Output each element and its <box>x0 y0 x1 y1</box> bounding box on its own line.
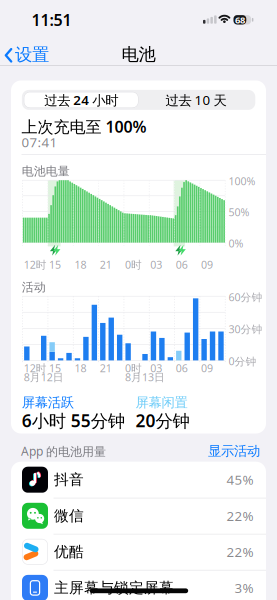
staticText: 8月13日 <box>125 370 165 384</box>
staticText: 60分钟 <box>229 290 263 304</box>
staticText: App 的电池用量 <box>21 443 106 459</box>
button[interactable]: 主屏幕与锁定屏幕 <box>11 570 266 600</box>
staticText: 100% <box>229 174 256 188</box>
staticText: 0时 <box>125 257 142 272</box>
staticText: 过去 10 天 <box>166 91 227 109</box>
staticText: 20分钟 <box>135 409 189 432</box>
button[interactable]: 显示活动 <box>170 445 260 456</box>
staticText: 68 <box>235 14 245 26</box>
staticText: 50% <box>229 205 250 219</box>
staticText: 11:51 <box>31 9 71 30</box>
staticText: 主屏幕与锁定屏幕 <box>54 579 174 597</box>
button[interactable]: 过去 24 小时 <box>24 92 139 108</box>
staticText: 22% <box>226 543 253 561</box>
button[interactable]: 抖音 <box>11 462 266 498</box>
staticText: 微信 <box>54 507 84 525</box>
staticText: 0% <box>229 236 244 250</box>
staticText: 21 <box>100 257 112 272</box>
staticText: 电池 <box>121 44 155 65</box>
staticText: 18 <box>74 257 86 272</box>
staticText: 活动 <box>22 280 46 295</box>
staticText: 22% <box>226 507 253 525</box>
staticText: 15 <box>49 361 61 375</box>
staticText: 18 <box>74 361 86 375</box>
button[interactable]: 微信 <box>11 498 266 534</box>
staticText: 0时 <box>125 361 142 375</box>
staticText: 上次充电至 100% <box>21 116 146 137</box>
staticText: 显示活动 <box>208 443 260 459</box>
staticText: 0分钟 <box>229 354 257 368</box>
staticText: 21 <box>100 361 112 375</box>
staticText: 03 <box>150 361 162 375</box>
staticText: 07:41 <box>21 133 57 151</box>
staticText: 09 <box>201 361 213 375</box>
staticText: 45% <box>226 471 253 488</box>
staticText: 06 <box>176 257 188 272</box>
staticText: 30分钟 <box>229 322 263 336</box>
staticText: 06 <box>176 361 188 375</box>
staticText: 过去 24 小时 <box>44 91 118 109</box>
staticText: 03 <box>150 257 162 272</box>
staticText: 09 <box>201 257 213 272</box>
staticText: 屏幕活跃 <box>22 394 74 411</box>
staticText: 优酷 <box>54 543 84 561</box>
staticText: 电池电量 <box>22 164 70 179</box>
staticText: 12时 <box>24 257 47 272</box>
staticText: 设置 <box>15 44 49 65</box>
staticText: 8月12日 <box>24 370 64 384</box>
staticText: 15 <box>49 257 61 272</box>
staticText: 12时 <box>24 361 47 375</box>
staticText: 6小时 55分钟 <box>22 409 125 432</box>
staticText: 3% <box>234 579 253 597</box>
staticText: 屏幕闲置 <box>135 394 187 411</box>
button[interactable]: 过去 10 天 <box>139 92 253 108</box>
button[interactable]: 优酷 <box>11 534 266 570</box>
button[interactable]: 设置 <box>0 0 58 34</box>
staticText: 抖音 <box>54 471 84 489</box>
